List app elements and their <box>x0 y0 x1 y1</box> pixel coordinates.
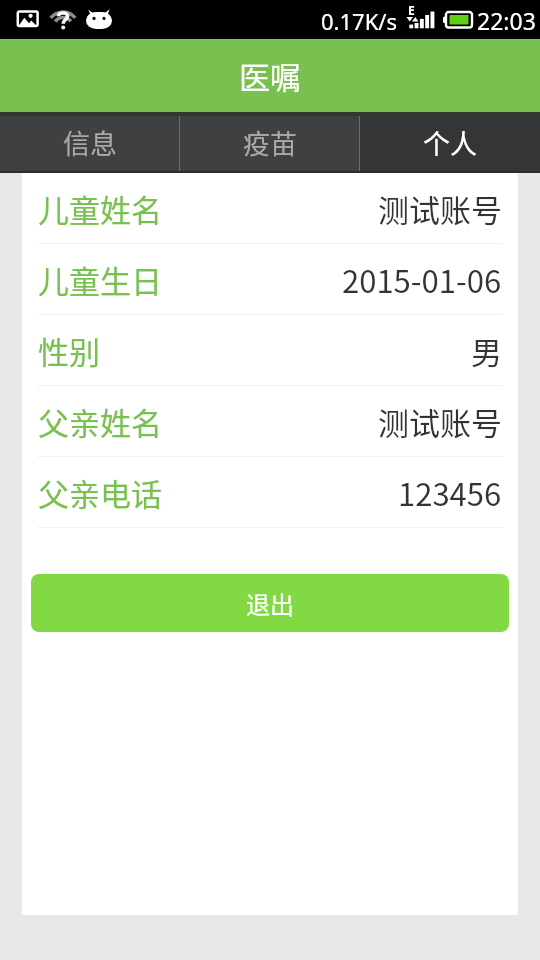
button[interactable]: 信息 <box>0 112 180 173</box>
staticText: 信息 <box>63 123 117 162</box>
staticText: 退出 <box>246 586 294 621</box>
staticText: 疫苗 <box>243 123 297 162</box>
staticText: 医嘱 <box>239 53 301 98</box>
staticText: 0.17K/s <box>321 6 397 36</box>
button[interactable]: 儿童姓名 <box>22 173 518 244</box>
button[interactable]: 性别 <box>22 315 518 386</box>
staticText: 个人 <box>423 123 477 162</box>
button[interactable]: 儿童生日 <box>22 244 518 315</box>
button[interactable]: 疫苗 <box>180 112 360 173</box>
staticText: 2015-01-06 <box>342 257 502 302</box>
button[interactable]: 父亲电话 <box>22 457 518 528</box>
button[interactable]: 父亲姓名 <box>22 386 518 457</box>
staticText: 123456 <box>398 470 502 515</box>
staticText: 测试账号 <box>378 186 502 231</box>
button[interactable]: 个人 <box>360 112 540 173</box>
staticText: 儿童姓名 <box>38 186 162 231</box>
staticText: 父亲姓名 <box>38 399 162 444</box>
staticText: 性别 <box>38 328 100 373</box>
staticText: 测试账号 <box>378 399 502 444</box>
staticText: 父亲电话 <box>38 470 162 515</box>
staticText: 儿童生日 <box>38 257 162 302</box>
staticText: E <box>408 2 415 18</box>
staticText: 男 <box>471 328 502 373</box>
button[interactable]: 退出 <box>31 574 509 632</box>
staticText: 22:03 <box>477 5 536 36</box>
